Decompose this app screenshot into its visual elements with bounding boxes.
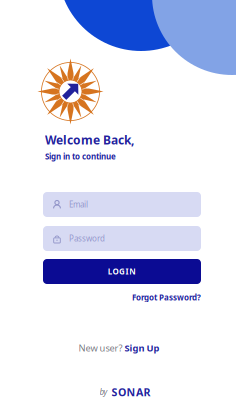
- staticText: Welcome Back,: [45, 132, 134, 148]
- button[interactable]: New user?: [1, 341, 236, 355]
- staticText: Forgot Password?: [132, 292, 201, 303]
- staticText: LOGIN: [108, 266, 136, 277]
- staticText: by: [99, 387, 107, 397]
- staticText: Password: [69, 233, 105, 244]
- button[interactable]: Forgot Password?: [43, 292, 201, 303]
- staticText: New user?: [78, 342, 124, 354]
- button[interactable]: Password: [43, 226, 201, 251]
- staticText: Sign in to continue: [45, 151, 116, 162]
- button[interactable]: LOGIN: [43, 259, 201, 284]
- staticText: Email: [69, 199, 88, 210]
- button[interactable]: Email: [43, 192, 201, 217]
- staticText: Sign Up: [124, 342, 159, 354]
- staticText: SONAR: [111, 385, 150, 399]
